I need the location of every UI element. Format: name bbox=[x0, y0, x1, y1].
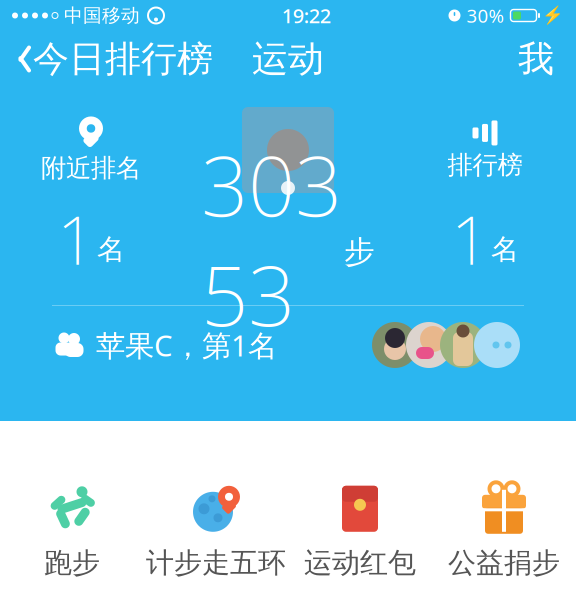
staticText: 30% bbox=[466, 3, 504, 28]
staticText: 公益捐步 bbox=[448, 546, 560, 580]
button[interactable]: 公益捐步 bbox=[432, 481, 576, 581]
staticText: 附近排名 bbox=[41, 152, 141, 183]
button[interactable]: 苹果C，第1名 bbox=[0, 306, 576, 384]
staticText: 名 bbox=[97, 232, 125, 267]
staticText: 中国移动 bbox=[64, 4, 140, 27]
button[interactable]: 计步走五环 bbox=[144, 481, 288, 581]
staticText: 名 bbox=[491, 232, 519, 267]
staticText: 苹果C，第1名 bbox=[96, 325, 277, 364]
staticText: 计步走五环 bbox=[146, 546, 286, 580]
staticText: 运动 bbox=[252, 37, 324, 81]
button[interactable]: 今日排行榜 bbox=[0, 31, 227, 87]
staticText: 我 bbox=[518, 37, 554, 81]
staticText: 今日排行榜 bbox=[33, 37, 213, 81]
staticText: ⚡ bbox=[542, 6, 564, 25]
staticText: 运动红包 bbox=[304, 546, 416, 580]
button[interactable]: 我 bbox=[496, 31, 576, 87]
staticText: 1 bbox=[451, 195, 489, 283]
staticText: 30353 bbox=[201, 129, 342, 349]
staticText: 步 bbox=[344, 233, 375, 271]
button[interactable]: 运动红包 bbox=[288, 481, 432, 581]
staticText: 1 bbox=[57, 195, 95, 283]
staticText: 19:22 bbox=[282, 2, 331, 29]
button[interactable]: 附近排名 bbox=[6, 114, 176, 186]
button[interactable]: 跑步 bbox=[0, 481, 144, 581]
staticText: 排行榜 bbox=[447, 149, 522, 180]
button[interactable]: 排行榜 bbox=[400, 114, 570, 186]
staticText: 跑步 bbox=[44, 546, 100, 580]
